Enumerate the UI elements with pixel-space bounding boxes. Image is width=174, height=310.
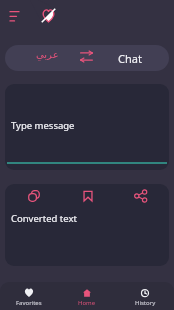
button[interactable]: Chat [90, 45, 169, 71]
staticText: Home [78, 299, 96, 307]
button[interactable]: History [116, 282, 174, 310]
button[interactable]: Home [58, 282, 116, 310]
staticText: Type message [11, 119, 75, 132]
staticText: History [135, 299, 156, 307]
button[interactable]: Favorites [0, 282, 58, 310]
staticText: Favorites [16, 299, 42, 307]
button[interactable]: Menu [4, 5, 25, 26]
staticText: Converted text [11, 212, 77, 225]
button[interactable]: Share [131, 186, 151, 206]
staticText: عربي [36, 49, 59, 61]
button[interactable]: عربي [5, 45, 90, 71]
button[interactable]: Type message [5, 84, 169, 170]
staticText: Chat [118, 51, 142, 66]
button[interactable]: App logo [38, 5, 58, 25]
button[interactable]: Swap languages [74, 45, 98, 68]
button[interactable]: Bookmark [78, 186, 98, 206]
button[interactable]: Copy [24, 186, 44, 206]
